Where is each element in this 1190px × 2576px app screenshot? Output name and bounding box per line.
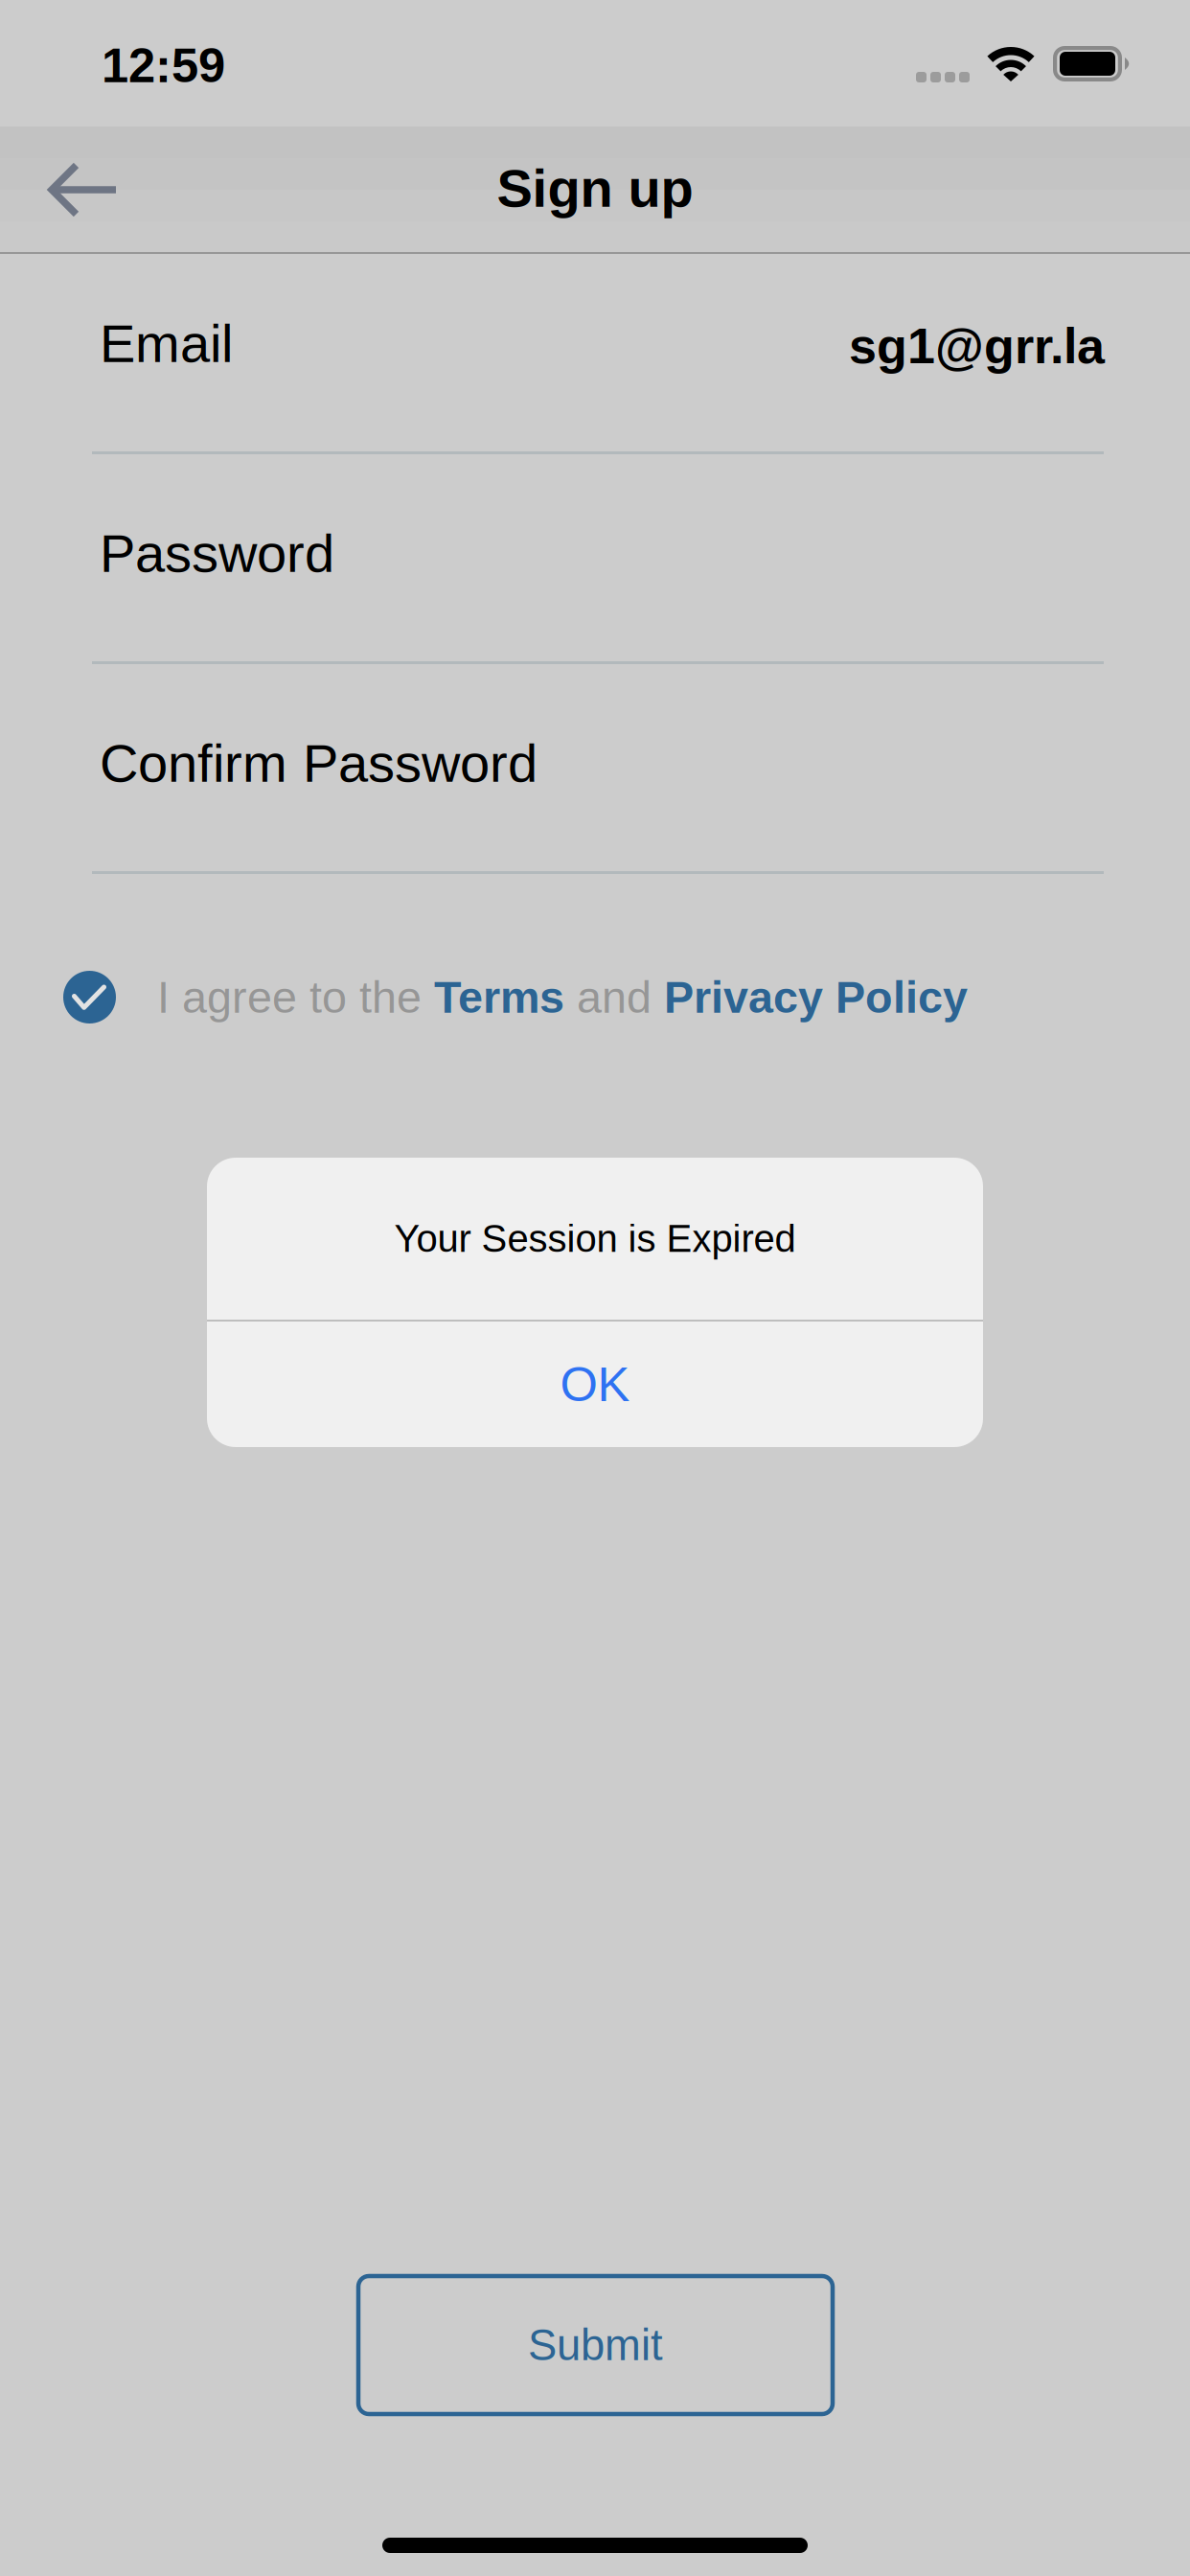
staticText: Password xyxy=(100,523,334,583)
staticText: Email xyxy=(100,313,233,373)
staticText: I agree to the xyxy=(157,972,434,1022)
staticText: and xyxy=(564,972,664,1022)
button[interactable]: I agree to the Terms and Privacy Policy xyxy=(0,966,968,1028)
button[interactable]: OK xyxy=(207,1322,983,1447)
staticText: Your Session is Expired xyxy=(394,1217,796,1260)
button[interactable]: Submit xyxy=(358,2276,833,2414)
staticText: sg1@grr.la xyxy=(849,318,1105,374)
button[interactable]: Back xyxy=(0,139,153,241)
staticText: Terms xyxy=(434,972,564,1022)
staticText: Confirm Password xyxy=(100,733,538,793)
staticText: OK xyxy=(560,1357,630,1411)
staticText: Privacy Policy xyxy=(664,972,968,1022)
staticText: 12:59 xyxy=(102,38,225,93)
staticText: Sign up xyxy=(497,158,693,218)
staticText: Submit xyxy=(528,2321,663,2369)
